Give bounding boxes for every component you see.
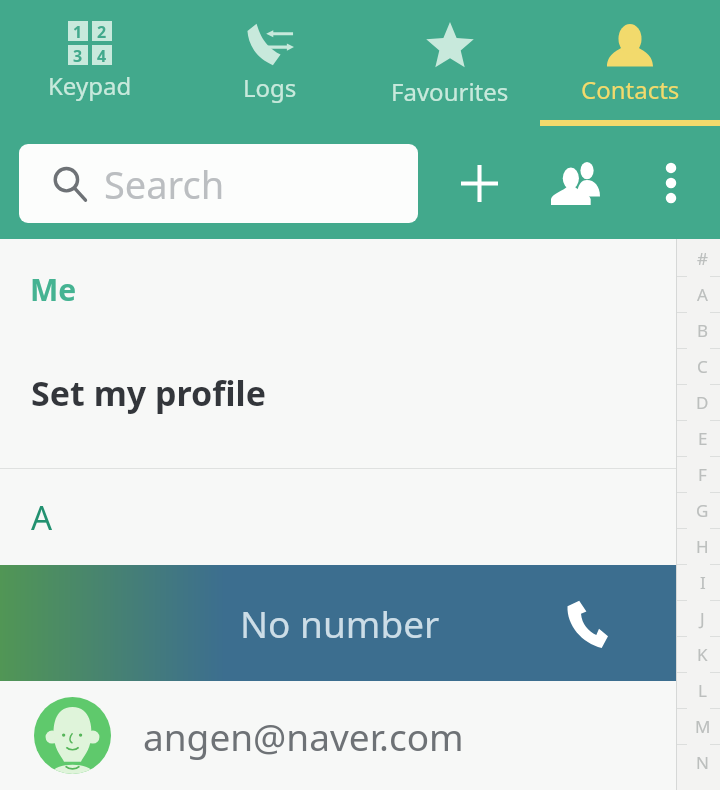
button[interactable]: L bbox=[677, 672, 720, 708]
button[interactable]: I bbox=[677, 564, 720, 600]
staticText: E bbox=[698, 427, 708, 450]
button[interactable]: Favourites bbox=[360, 0, 540, 127]
button[interactable]: # bbox=[677, 240, 720, 276]
button[interactable]: K bbox=[677, 636, 720, 672]
button[interactable]: Call bbox=[540, 565, 630, 681]
button[interactable]: Add contact bbox=[442, 146, 516, 220]
staticText: Favourites bbox=[391, 75, 509, 108]
staticText: # bbox=[697, 247, 708, 270]
button[interactable]: M bbox=[677, 708, 720, 744]
button[interactable]: Logs bbox=[180, 0, 360, 127]
staticText: 1 bbox=[73, 21, 83, 41]
staticText: A bbox=[697, 283, 708, 306]
staticText: K bbox=[697, 643, 708, 666]
button[interactable]: A bbox=[677, 276, 720, 312]
button[interactable]: F bbox=[677, 456, 720, 492]
button[interactable]: More options bbox=[634, 146, 708, 220]
staticText: 2 bbox=[97, 21, 107, 41]
button[interactable]: Me bbox=[0, 239, 720, 468]
button[interactable]: H bbox=[677, 528, 720, 564]
button[interactable]: Search bbox=[19, 144, 418, 223]
staticText: L bbox=[698, 679, 707, 702]
staticText: Logs bbox=[243, 71, 297, 104]
staticText: N bbox=[696, 751, 709, 774]
staticText: F bbox=[698, 463, 707, 486]
button[interactable]: B bbox=[677, 312, 720, 348]
staticText: B bbox=[697, 319, 709, 342]
staticText: J bbox=[700, 607, 705, 630]
staticText: No number bbox=[240, 598, 440, 648]
staticText: H bbox=[696, 535, 709, 558]
staticText: Set my profile bbox=[31, 370, 267, 416]
button[interactable]: Contacts bbox=[540, 0, 720, 127]
button[interactable]: 1 bbox=[0, 0, 180, 127]
staticText: G bbox=[696, 499, 709, 522]
staticText: D bbox=[696, 391, 709, 414]
staticText: Me bbox=[30, 269, 77, 310]
button[interactable]: E bbox=[677, 420, 720, 456]
staticText: Search bbox=[104, 158, 225, 210]
button[interactable]: G bbox=[677, 492, 720, 528]
button[interactable]: D bbox=[677, 384, 720, 420]
button[interactable]: angen@naver.com bbox=[0, 681, 720, 790]
staticText: A bbox=[31, 495, 53, 540]
staticText: I bbox=[700, 571, 706, 594]
staticText: Keypad bbox=[48, 69, 132, 102]
button[interactable]: C bbox=[677, 348, 720, 384]
staticText: M bbox=[695, 715, 711, 738]
button[interactable]: No number bbox=[0, 565, 720, 681]
button[interactable]: Groups bbox=[538, 146, 612, 220]
staticText: angen@naver.com bbox=[143, 711, 464, 761]
button[interactable]: N bbox=[677, 744, 720, 780]
staticText: C bbox=[697, 355, 708, 378]
staticText: 3 bbox=[73, 45, 83, 65]
staticText: Contacts bbox=[581, 73, 680, 106]
staticText: 4 bbox=[97, 45, 107, 65]
button[interactable]: J bbox=[677, 600, 720, 636]
